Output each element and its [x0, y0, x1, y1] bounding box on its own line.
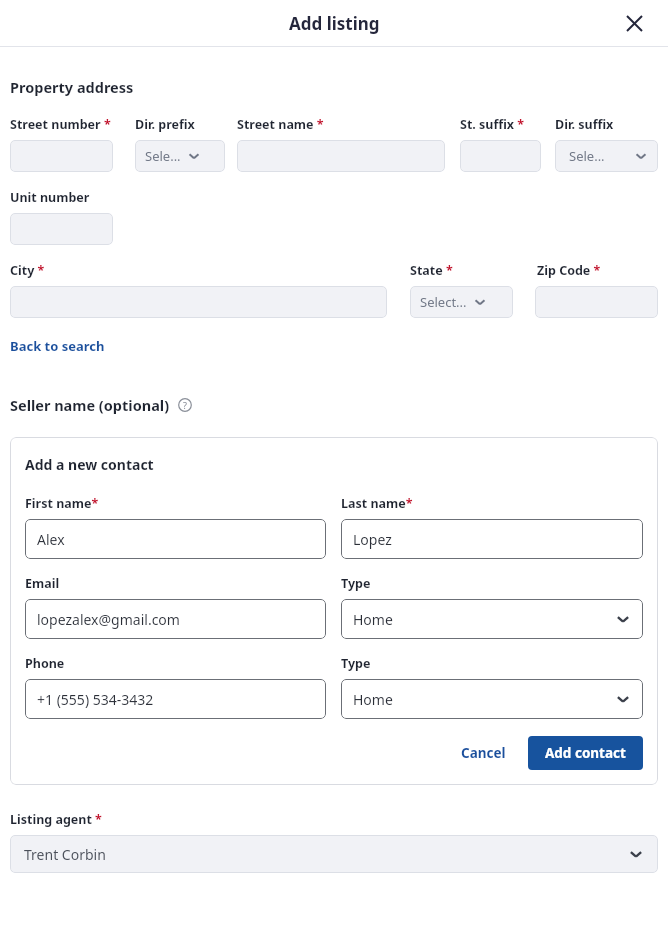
- button[interactable]: Cancel: [449, 736, 518, 770]
- staticText: Listing agent *: [10, 811, 102, 828]
- staticText: Type: [341, 655, 371, 672]
- button[interactable]: Trent Corbin: [10, 835, 658, 873]
- staticText: Lopez: [353, 530, 392, 549]
- staticText: Street number *: [10, 116, 111, 133]
- button[interactable]: +1 (555) 534-3432: [25, 679, 326, 719]
- staticText: Add a new contact: [25, 455, 154, 474]
- staticText: Home: [353, 690, 393, 709]
- button[interactable]: Home: [341, 599, 643, 639]
- staticText: lopezalex@gmail.com: [37, 610, 180, 629]
- button[interactable]: Lopez: [341, 519, 643, 559]
- staticText: Zip Code *: [537, 262, 601, 279]
- staticText: Sele...: [569, 147, 605, 165]
- button[interactable]: [460, 140, 541, 172]
- staticText: Sele...: [145, 147, 181, 165]
- staticText: Trent Corbin: [24, 845, 106, 864]
- staticText: Back to search: [10, 337, 105, 355]
- staticText: Add contact: [545, 744, 626, 762]
- button[interactable]: [10, 213, 113, 245]
- staticText: State *: [410, 262, 453, 279]
- button[interactable]: Alex: [25, 519, 326, 559]
- staticText: Last name*: [341, 495, 413, 512]
- staticText: Property address: [10, 77, 134, 97]
- button[interactable]: Sele...: [555, 140, 658, 172]
- staticText: City *: [10, 262, 45, 279]
- staticText: Select...: [420, 293, 467, 311]
- staticText: Alex: [37, 530, 65, 549]
- staticText: Seller name (optional): [10, 395, 170, 415]
- staticText: Street name *: [237, 116, 324, 133]
- button[interactable]: lopezalex@gmail.com: [25, 599, 326, 639]
- staticText: Unit number: [10, 189, 90, 206]
- button[interactable]: [10, 286, 387, 318]
- staticText: Cancel: [461, 744, 506, 762]
- button[interactable]: Select...: [410, 286, 513, 318]
- button[interactable]: Home: [341, 679, 643, 719]
- button[interactable]: [237, 140, 445, 172]
- button[interactable]: Sele...: [135, 140, 225, 172]
- staticText: +1 (555) 534-3432: [37, 690, 154, 709]
- staticText: Email: [25, 575, 60, 592]
- staticText: Home: [353, 610, 393, 629]
- button[interactable]: [535, 286, 658, 318]
- staticText: St. suffix *: [460, 116, 525, 133]
- staticText: Dir. suffix: [555, 116, 614, 133]
- button[interactable]: Help: [178, 398, 192, 412]
- staticText: Add listing: [289, 12, 380, 35]
- staticText: Phone: [25, 655, 65, 672]
- staticText: Type: [341, 575, 371, 592]
- button[interactable]: Close: [620, 9, 648, 37]
- staticText: First name*: [25, 495, 99, 512]
- staticText: Dir. prefix: [135, 116, 195, 133]
- button[interactable]: Add contact: [528, 736, 643, 770]
- staticText: ?: [183, 399, 187, 411]
- button[interactable]: [10, 140, 113, 172]
- button[interactable]: Back to search: [10, 337, 105, 355]
